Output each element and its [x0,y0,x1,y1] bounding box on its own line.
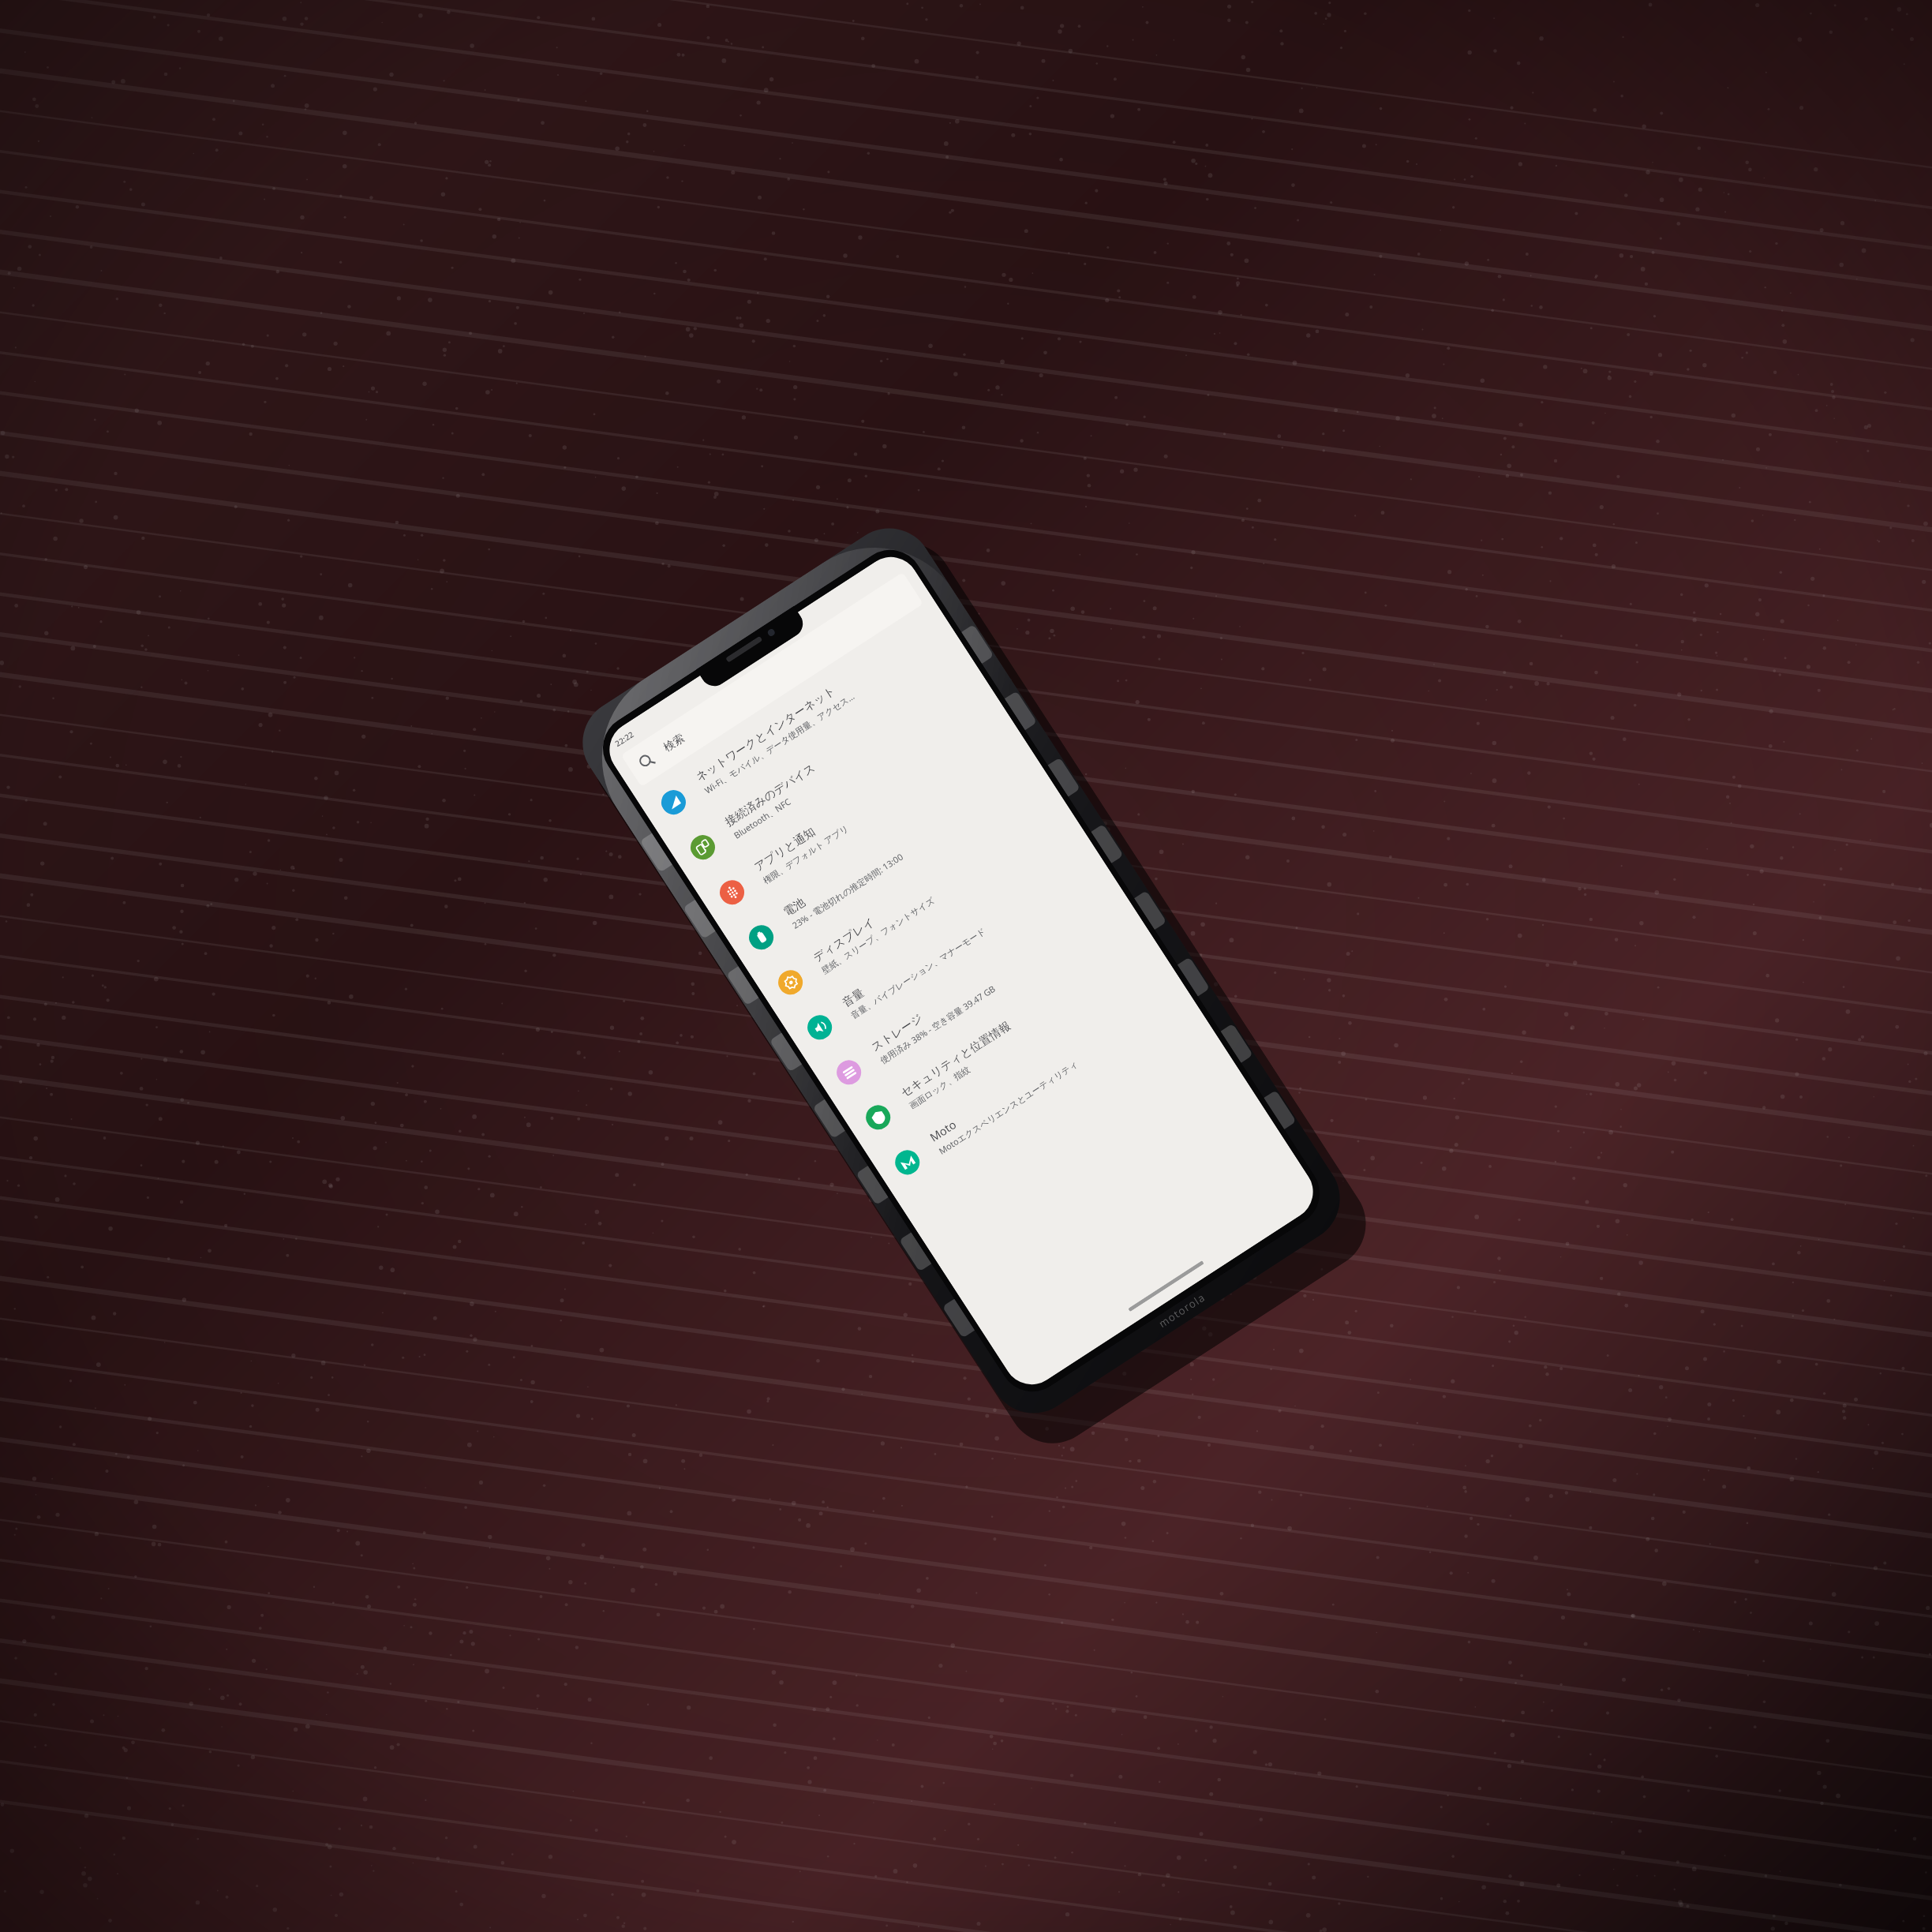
staticText: ネットワークとインターネット [693,683,838,784]
staticText: ディスプレイ [810,914,878,965]
staticText: 電池 [781,895,808,919]
staticText: motorola [1156,1290,1208,1330]
button[interactable]: ストレージ [809,871,1139,1111]
button[interactable]: 検索 [621,572,923,787]
staticText: 検索 [661,731,687,755]
staticText: Motoエクスペリエンスとユーティリティ [936,1057,1081,1157]
staticText: 使用済み 38% - 空き容量 39.47 GB [877,982,998,1066]
staticText: 接続済みのデバイス [722,760,818,829]
button[interactable]: Home [1128,1260,1204,1312]
staticText: 権限、デフォルト アプリ [761,822,850,886]
button[interactable]: ネットワークとインターネット [634,600,964,841]
staticText: 23% - 電池切れの推定時間: 13:00 [790,850,905,931]
button[interactable]: 電池 [722,735,1051,976]
staticText: 音量、バイブレーション、マナーモード [849,925,988,1021]
staticText: 22:22 [613,729,636,749]
button[interactable]: アプリと通知 [692,690,1022,931]
staticText: Bluetooth、NFC [731,795,793,841]
staticText: アプリと通知 [752,824,818,874]
button[interactable]: 音量 [780,826,1110,1066]
button[interactable]: 接続済みのデバイス [663,645,993,886]
button[interactable]: ディスプレイ [751,781,1081,1021]
staticText: Wi-Fi、モバイル、データ使用量、アクセス… [702,690,857,796]
button[interactable]: セキュリティと位置情報 [839,915,1168,1156]
staticText: セキュリティと位置情報 [898,1018,1013,1100]
staticText: 画面ロック、指紋 [907,1064,972,1111]
staticText: 音量 [840,985,867,1010]
button[interactable]: Moto [868,961,1197,1201]
staticText: ストレージ [868,1011,925,1054]
staticText: Moto [926,1116,959,1145]
staticText: 壁紙、スリープ、フォントサイズ [819,895,937,976]
